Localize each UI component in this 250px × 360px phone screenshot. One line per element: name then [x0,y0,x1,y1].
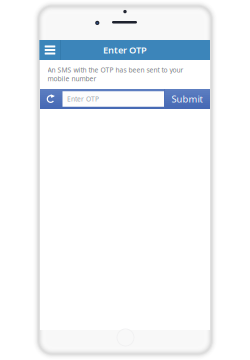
button[interactable]: Enter OTP [62,91,164,107]
button[interactable]: Menu [40,40,60,60]
staticText: Enter OTP [67,95,99,103]
staticText: Enter OTP [103,44,147,56]
staticText: Submit [171,93,202,105]
button[interactable]: Submit [164,89,210,109]
button[interactable]: Resend OTP [40,89,62,109]
staticText: An SMS with the OTP has been sent to you… [48,65,184,83]
